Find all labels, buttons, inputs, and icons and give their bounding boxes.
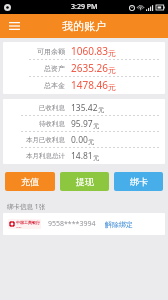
button[interactable]: 本月已收利息: [3, 132, 165, 147]
button[interactable]: 绑卡: [114, 172, 163, 191]
staticText: 充值: [21, 176, 39, 187]
staticText: 提现: [76, 176, 94, 187]
other: ICBC bank logo: [9, 219, 40, 229]
staticText: 0.00: [71, 134, 88, 146]
button[interactable]: 总本金: [3, 77, 165, 93]
staticText: 元: [88, 138, 95, 146]
staticText: 元: [108, 48, 116, 58]
staticText: 14.81: [71, 150, 93, 162]
staticText: 元: [93, 122, 100, 130]
staticText: 总资产: [3, 64, 65, 73]
staticText: 9558****3994: [48, 219, 96, 229]
staticText: 元: [108, 65, 116, 75]
staticText: 1478.46: [71, 78, 108, 92]
staticText: 1060.83: [71, 44, 108, 58]
button[interactable]: ICBC bank logo: [3, 213, 165, 235]
staticText: 95.97: [71, 118, 93, 130]
staticText: 2635.26: [71, 61, 108, 75]
staticText: ICBC: [16, 225, 22, 228]
staticText: 待收利息: [3, 120, 65, 128]
button[interactable]: 充值: [5, 172, 55, 191]
button[interactable]: 总资产: [3, 60, 165, 76]
staticText: 本月利息总计: [3, 152, 65, 160]
button[interactable]: 本月利息总计: [3, 148, 165, 163]
staticText: 可用余额: [3, 47, 65, 56]
staticText: 绑卡: [130, 176, 148, 187]
staticText: 元: [93, 154, 100, 162]
staticText: 3:29 PM: [71, 2, 98, 12]
staticText: 元: [98, 106, 105, 114]
staticText: 已收利息: [3, 104, 65, 112]
button[interactable]: Open navigation menu: [4, 16, 24, 36]
button[interactable]: 可用余额: [3, 43, 165, 59]
staticText: 解除绑定: [105, 220, 133, 229]
button[interactable]: 待收利息: [3, 116, 165, 131]
staticText: 本月已收利息: [3, 136, 65, 144]
staticText: 元: [108, 82, 116, 92]
staticText: 绑卡信息 1张: [7, 202, 45, 211]
button[interactable]: 提现: [60, 172, 109, 191]
button[interactable]: 解除绑定: [105, 220, 133, 229]
staticText: 中国工商银行: [16, 220, 40, 225]
staticText: 总本金: [3, 81, 65, 90]
staticText: 我的账户: [62, 19, 106, 33]
staticText: 135.42: [71, 102, 98, 114]
button[interactable]: 已收利息: [3, 100, 165, 115]
